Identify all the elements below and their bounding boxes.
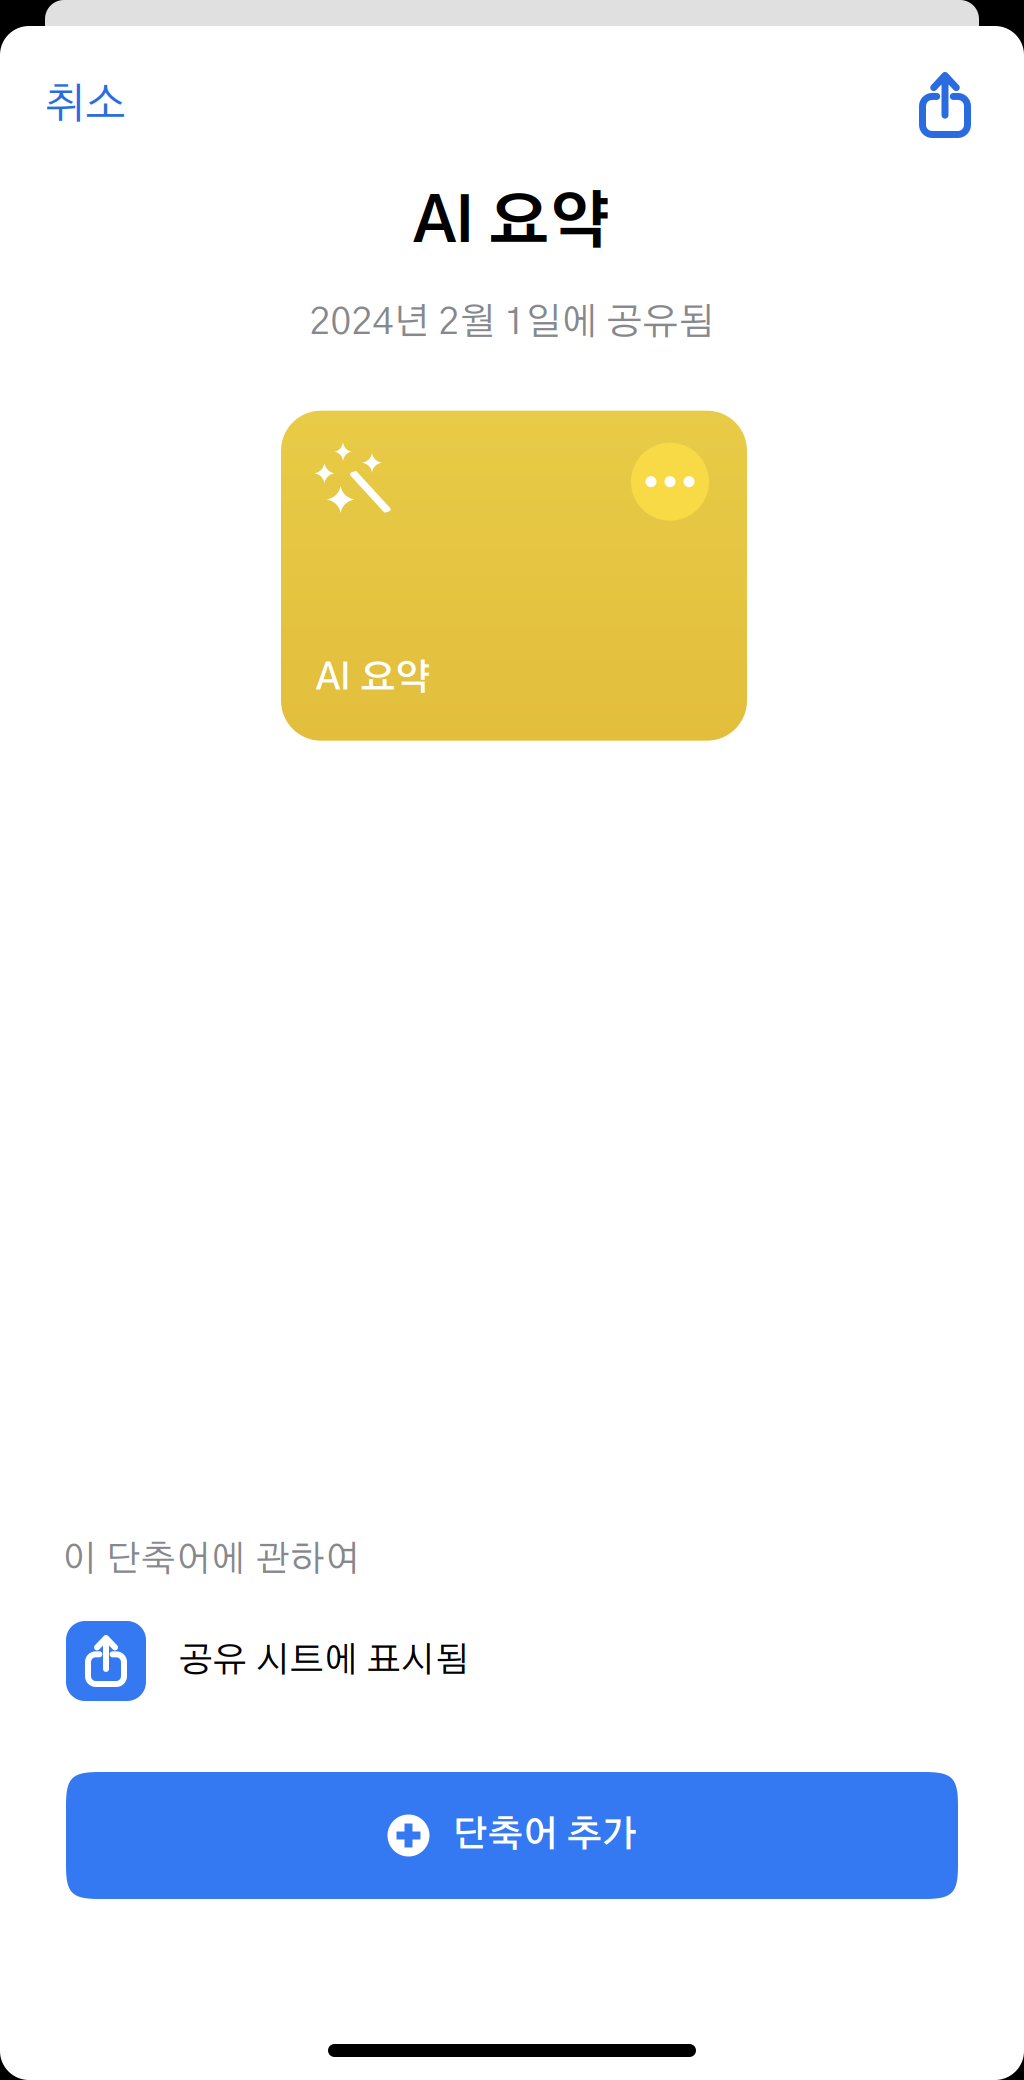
button[interactable]: 공유 [895,58,1024,152]
staticText: 공유 시트에 표시됨 [179,1643,469,1679]
staticText: AI 요약 [316,661,430,697]
button[interactable]: 단축어 추가 [66,1772,958,1899]
staticText: 취소 [44,84,126,126]
button[interactable]: AI 요약 [281,411,747,741]
staticText: 2024년 2월 1일에 공유됨 [309,304,714,342]
button[interactable]: 취소 [0,68,150,142]
staticText: 이 단축어에 관하여 [62,1542,360,1578]
staticText: 단축어 추가 [452,1817,636,1853]
staticText: AI 요약 [413,193,610,254]
